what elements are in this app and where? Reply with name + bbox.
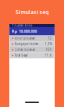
staticText: Tenor pinjaman	[14, 37, 35, 40]
staticText: Rp 10.000.000	[12, 29, 37, 34]
staticText: Simulasi seq	[15, 8, 48, 16]
staticText: Total bayar	[14, 54, 27, 57]
button[interactable]: Total bayar	[9, 53, 55, 58]
button[interactable]: Cicilan bulanan	[9, 47, 55, 53]
button[interactable]: Tenor pinjaman	[9, 35, 55, 41]
staticText: Cicilan bulanan	[14, 48, 35, 51]
staticText: 12	[48, 37, 52, 40]
staticText: Pinjaman Anda	[12, 24, 32, 27]
staticText: 1,5%	[45, 42, 52, 46]
staticText: Bunga per bulan	[14, 42, 38, 46]
staticText: 11,4	[45, 54, 52, 57]
button[interactable]: Bunga per bulan	[9, 41, 55, 47]
staticText: 950	[46, 48, 52, 51]
